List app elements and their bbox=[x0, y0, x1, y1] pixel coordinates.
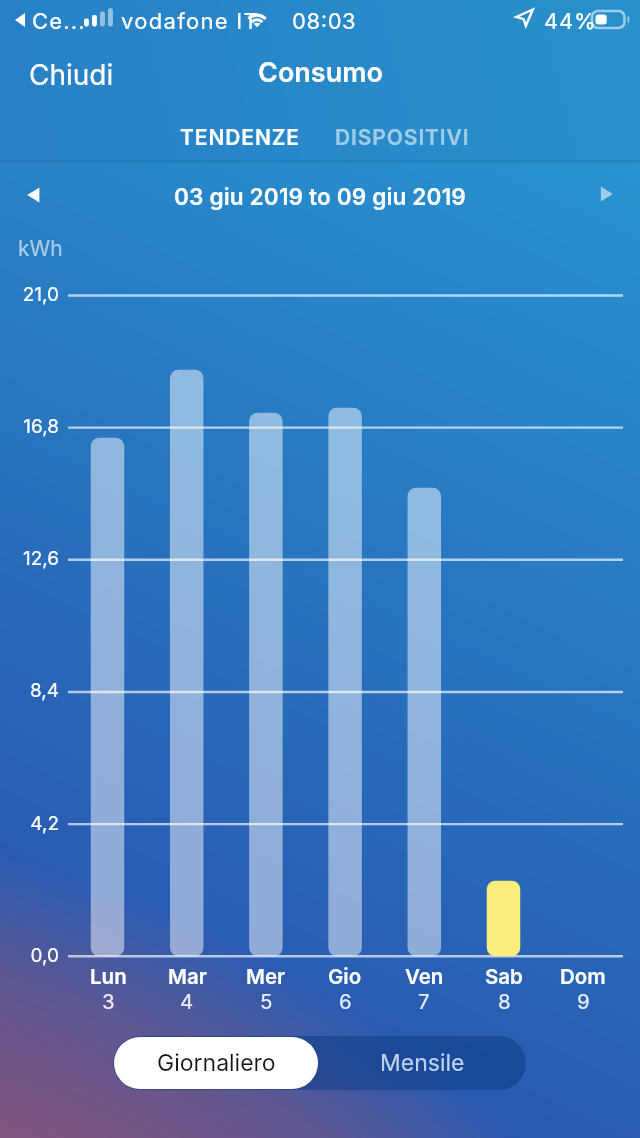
staticText: 44% bbox=[544, 8, 597, 35]
staticText: 08:03 bbox=[292, 8, 357, 35]
staticText: Mar bbox=[168, 964, 207, 989]
staticText: Chiudi bbox=[29, 58, 114, 92]
button[interactable]: Chiudi bbox=[18, 52, 125, 98]
button[interactable]: Mensile bbox=[319, 1036, 526, 1090]
staticText: 6 bbox=[339, 989, 352, 1014]
staticText: Mensile bbox=[380, 1049, 465, 1077]
staticText: kWh bbox=[18, 236, 63, 261]
staticText: 5 bbox=[260, 989, 273, 1014]
staticText: 12,6 bbox=[0, 547, 59, 570]
staticText: 7 bbox=[418, 989, 430, 1014]
staticText: 0,0 bbox=[0, 944, 59, 967]
staticText: DISPOSITIVI bbox=[335, 125, 470, 150]
staticText: vodafone IT bbox=[121, 8, 260, 35]
staticText: Ven bbox=[405, 964, 444, 989]
staticText: Sab bbox=[485, 964, 523, 989]
staticText: 3 bbox=[102, 989, 115, 1014]
staticText: 21,0 bbox=[0, 283, 59, 306]
staticText: 8,4 bbox=[0, 679, 59, 702]
staticText: Ce... bbox=[32, 8, 86, 35]
staticText: 8 bbox=[498, 989, 511, 1014]
button[interactable]: Previous week bbox=[13, 175, 53, 215]
button[interactable]: TENDENZE bbox=[174, 120, 306, 155]
staticText: Mer bbox=[246, 964, 286, 989]
staticText: Dom bbox=[560, 964, 606, 989]
staticText: Giornaliero bbox=[157, 1049, 276, 1077]
staticText: Lun bbox=[90, 964, 127, 989]
staticText: 9 bbox=[577, 989, 590, 1014]
button[interactable]: Next week bbox=[587, 174, 627, 214]
staticText: Consumo bbox=[258, 56, 383, 89]
staticText: Gio bbox=[328, 964, 362, 989]
button[interactable]: DISPOSITIVI bbox=[329, 120, 476, 155]
button[interactable]: Giornaliero bbox=[114, 1037, 318, 1089]
staticText: 4,2 bbox=[0, 812, 59, 835]
staticText: 16,8 bbox=[0, 415, 59, 438]
staticText: TENDENZE bbox=[180, 125, 300, 150]
staticText: 03 giu 2019 to 09 giu 2019 bbox=[174, 183, 466, 210]
staticText: 4 bbox=[180, 989, 194, 1014]
